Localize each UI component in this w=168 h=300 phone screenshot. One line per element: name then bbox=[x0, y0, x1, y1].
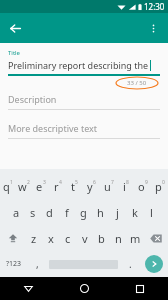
staticText: 33 / 50 bbox=[127, 79, 147, 87]
staticText: a bbox=[13, 205, 20, 220]
staticText: 1 bbox=[10, 179, 13, 186]
staticText: b bbox=[98, 231, 105, 246]
button[interactable]: w bbox=[16, 173, 32, 199]
button[interactable]: b bbox=[93, 225, 110, 251]
button[interactable]: Recent apps bbox=[112, 277, 168, 300]
staticText: t bbox=[71, 179, 75, 194]
staticText: o bbox=[138, 179, 145, 194]
staticText: 2 bbox=[27, 179, 30, 186]
staticText: w bbox=[18, 179, 27, 194]
button[interactable]: a bbox=[8, 199, 24, 225]
staticText: c bbox=[65, 231, 71, 246]
staticText: v bbox=[82, 231, 88, 246]
staticText: u bbox=[104, 179, 111, 194]
button[interactable]: k bbox=[126, 199, 143, 225]
button[interactable]: Back bbox=[0, 277, 56, 300]
staticText: j bbox=[116, 205, 119, 220]
button[interactable]: ?123 bbox=[0, 251, 28, 277]
button[interactable]: d bbox=[41, 199, 58, 225]
staticText: r bbox=[54, 179, 59, 194]
button[interactable]: y bbox=[83, 173, 100, 199]
staticText: 6 bbox=[93, 179, 96, 186]
staticText: z bbox=[31, 231, 37, 246]
button[interactable]: j bbox=[109, 199, 126, 225]
button[interactable]: Description bbox=[8, 93, 160, 105]
staticText: , bbox=[36, 257, 39, 271]
button[interactable]: e bbox=[32, 173, 49, 199]
button[interactable]: . bbox=[121, 251, 139, 277]
button[interactable]: n bbox=[110, 225, 127, 251]
staticText: Preliminary report describing the bbox=[8, 59, 149, 71]
button[interactable]: m bbox=[127, 225, 144, 251]
button[interactable]: More options bbox=[138, 13, 168, 43]
button[interactable]: p bbox=[151, 173, 168, 199]
staticText: Description bbox=[8, 93, 57, 105]
staticText: s bbox=[30, 205, 36, 220]
staticText: e bbox=[36, 179, 43, 194]
staticText: 4 bbox=[59, 179, 62, 186]
button[interactable]: l bbox=[143, 199, 160, 225]
button[interactable]: s bbox=[24, 199, 41, 225]
button[interactable]: , bbox=[28, 251, 46, 277]
button[interactable]: Shift bbox=[0, 225, 25, 251]
button[interactable]: o bbox=[134, 173, 151, 199]
staticText: ?123 bbox=[6, 259, 22, 269]
staticText: q bbox=[3, 179, 10, 194]
staticText: k bbox=[132, 205, 138, 220]
button[interactable]: t bbox=[66, 173, 83, 199]
staticText: 8 bbox=[126, 179, 129, 186]
staticText: g bbox=[80, 205, 87, 220]
button[interactable]: h bbox=[92, 199, 109, 225]
staticText: y bbox=[87, 179, 93, 194]
staticText: f bbox=[65, 205, 69, 220]
staticText: 0 bbox=[162, 179, 165, 186]
staticText: 7 bbox=[111, 179, 114, 186]
staticText: d bbox=[46, 205, 53, 220]
button[interactable]: More descriptive text bbox=[8, 122, 160, 134]
button[interactable]: v bbox=[76, 225, 93, 251]
staticText: l bbox=[150, 205, 153, 220]
button[interactable]: u bbox=[100, 173, 117, 199]
button[interactable]: q bbox=[0, 173, 16, 199]
staticText: h bbox=[97, 205, 104, 220]
button[interactable]: x bbox=[42, 225, 59, 251]
staticText: 3 bbox=[43, 179, 46, 186]
button[interactable]: f bbox=[58, 199, 75, 225]
staticText: . bbox=[129, 257, 132, 271]
staticText: 12:30 bbox=[144, 1, 165, 12]
button[interactable]: Preliminary report describing the bbox=[8, 59, 160, 71]
button[interactable]: Navigate up bbox=[0, 13, 30, 43]
button[interactable]: Home bbox=[56, 277, 112, 300]
staticText: Title bbox=[8, 49, 20, 57]
button[interactable]: Delete bbox=[144, 225, 168, 251]
staticText: More descriptive text bbox=[8, 122, 98, 134]
staticText: m bbox=[130, 231, 141, 246]
staticText: p bbox=[155, 179, 162, 194]
button[interactable]: Enter bbox=[145, 255, 163, 273]
button[interactable]: r bbox=[49, 173, 66, 199]
button[interactable]: z bbox=[25, 225, 42, 251]
button[interactable]: c bbox=[59, 225, 76, 251]
staticText: 9 bbox=[145, 179, 148, 186]
staticText: 5 bbox=[75, 179, 78, 186]
button[interactable]: g bbox=[75, 199, 92, 225]
button[interactable]: i bbox=[117, 173, 134, 199]
staticText: n bbox=[115, 231, 122, 246]
staticText: x bbox=[48, 231, 54, 246]
staticText: i bbox=[123, 179, 126, 194]
